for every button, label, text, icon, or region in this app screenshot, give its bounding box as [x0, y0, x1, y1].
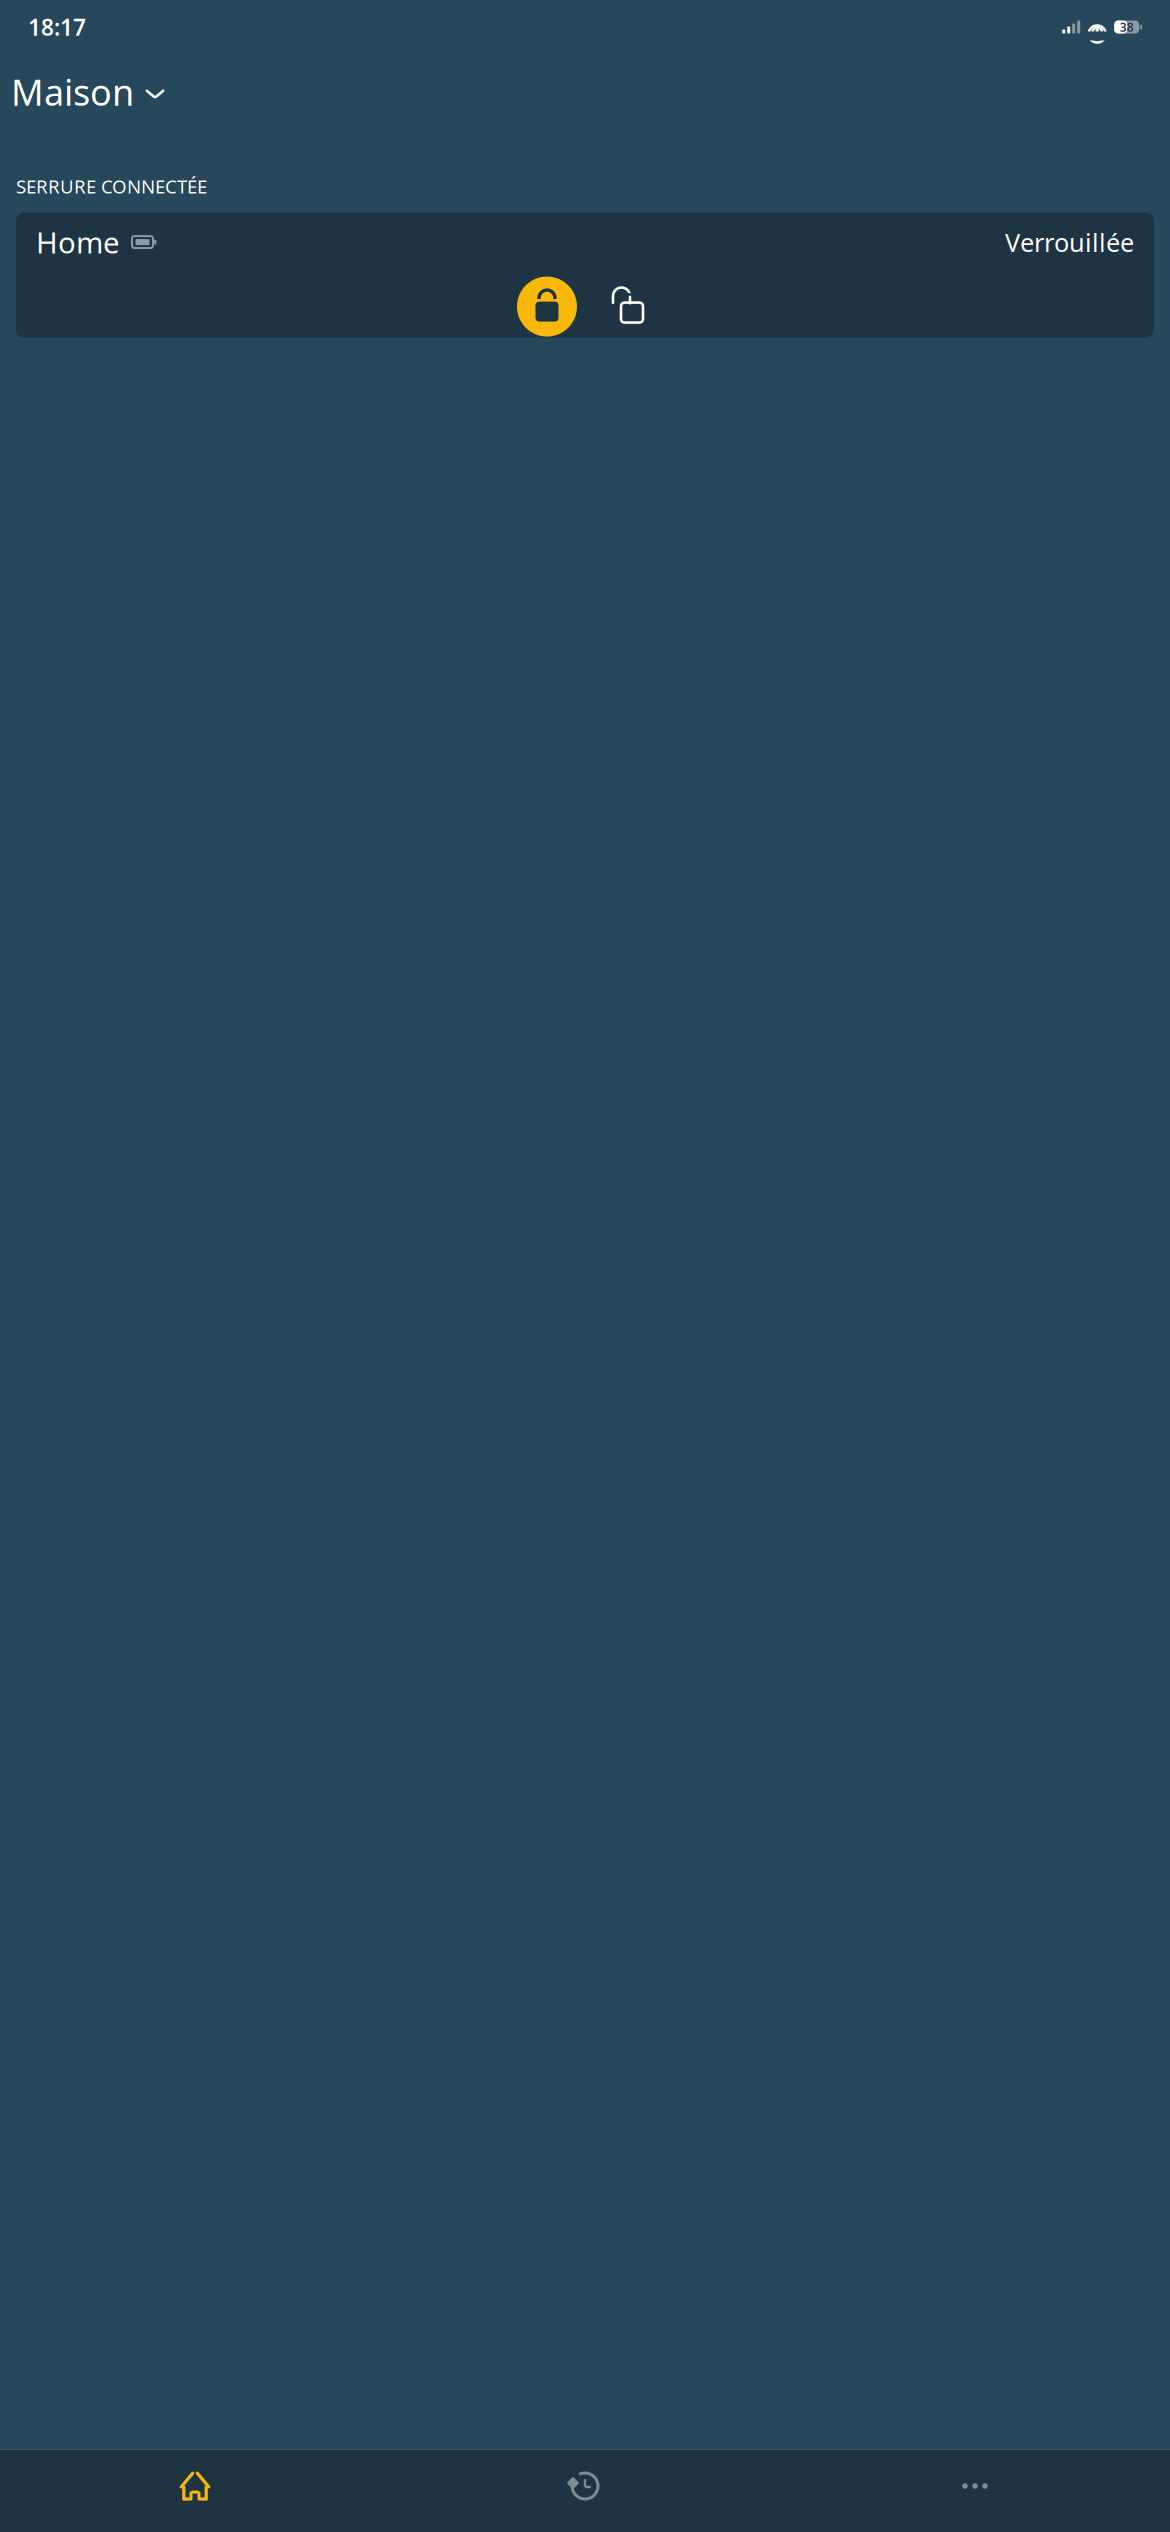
staticText: Maison: [11, 68, 134, 116]
staticText: Home: [36, 223, 120, 262]
button[interactable]: Historique: [390, 2460, 780, 2512]
staticText: Verrouillée: [1005, 225, 1134, 259]
staticText: 18:17: [28, 12, 86, 42]
button[interactable]: Accueil: [0, 2460, 390, 2512]
staticText: SERRURE CONNECTÉE: [16, 174, 207, 199]
button[interactable]: Verrouiller: [512, 272, 582, 342]
button[interactable]: Plus: [780, 2460, 1170, 2512]
button[interactable]: Choisir la maison: [11, 62, 165, 122]
button[interactable]: Déverrouiller: [596, 274, 658, 340]
staticText: 38: [1120, 19, 1134, 35]
